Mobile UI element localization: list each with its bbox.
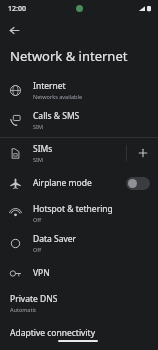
button[interactable]: Airplane mode toggle	[126, 177, 150, 190]
button[interactable]: Adaptive connectivity	[0, 318, 158, 348]
staticText: SIMs	[33, 143, 53, 155]
staticText: Automatic	[10, 306, 37, 313]
button[interactable]: Hotspot & tethering	[0, 198, 158, 228]
button[interactable]: Internet	[0, 75, 158, 105]
staticText: 12:00	[8, 4, 26, 14]
staticText: Off	[33, 216, 42, 223]
staticText: Private DNS	[10, 293, 58, 305]
staticText: Airplane mode	[33, 177, 126, 189]
button[interactable]: Private DNS	[0, 288, 158, 318]
button[interactable]: Back	[4, 20, 24, 40]
button[interactable]: Data Saver	[0, 228, 158, 258]
staticText: Adaptive connectivity	[10, 327, 96, 339]
staticText: Off	[33, 246, 42, 253]
staticText: VPN	[33, 267, 50, 279]
button[interactable]: Airplane mode	[0, 168, 158, 198]
staticText: Data Saver	[33, 233, 77, 245]
staticText: Calls & SMS	[33, 110, 80, 122]
button[interactable]: VPN	[0, 258, 158, 288]
button[interactable]: Add SIM	[127, 138, 158, 168]
staticText: Hotspot & tethering	[33, 203, 113, 215]
staticText: Networks available	[33, 93, 82, 100]
staticText: Internet	[33, 80, 66, 92]
button[interactable]: SIMs	[0, 138, 126, 168]
staticText: Network & internet	[10, 47, 128, 65]
staticText: SIM	[33, 123, 43, 130]
staticText: SIM	[33, 156, 43, 163]
button[interactable]: Calls & SMS	[0, 105, 158, 135]
